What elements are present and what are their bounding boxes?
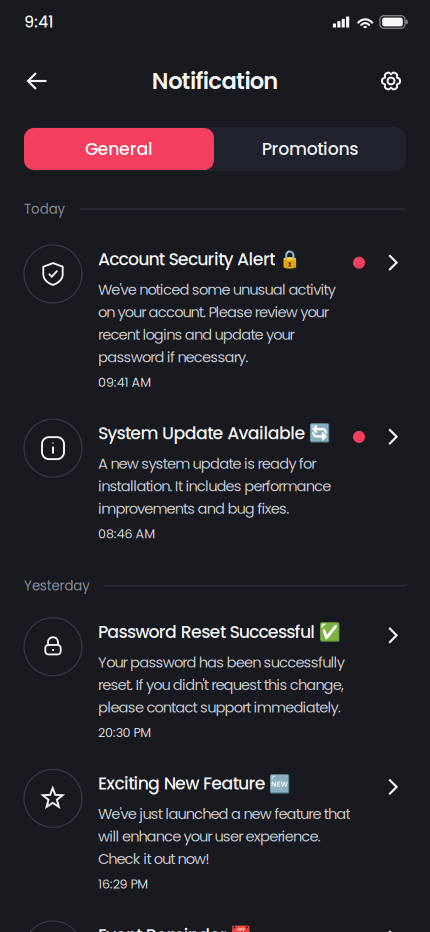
staticText: General — [85, 137, 153, 161]
button[interactable]: Exciting New Feature 🆕 — [24, 769, 406, 893]
button[interactable]: Back — [15, 59, 59, 103]
button[interactable]: General — [24, 128, 214, 170]
staticText: Password Reset Successful ✅ — [98, 620, 341, 644]
button[interactable]: System Update Available 🔄 — [24, 419, 406, 543]
staticText: 16:29 PM — [98, 875, 148, 893]
button[interactable]: Settings — [369, 59, 413, 103]
staticText: Yesterday — [24, 576, 90, 595]
staticText: We've just launched a new feature that w… — [98, 804, 350, 869]
button[interactable]: Password Reset Successful ✅ — [24, 618, 406, 741]
button[interactable]: Account Security Alert 🔒 — [24, 245, 406, 391]
staticText: Event Reminder 📅 — [98, 923, 252, 932]
staticText: Exciting New Feature 🆕 — [98, 771, 291, 796]
staticText: Your password has been successfully rese… — [98, 652, 345, 718]
staticText: Notification — [152, 65, 278, 97]
staticText: 9:41 — [24, 11, 54, 33]
button[interactable]: Event Reminder 📅 — [24, 921, 406, 932]
staticText: 08:46 AM — [98, 525, 155, 543]
staticText: 20:30 PM — [98, 724, 151, 741]
staticText: Promotions — [262, 137, 358, 161]
staticText: Today — [24, 200, 66, 218]
staticText: A new system update is ready for install… — [98, 453, 331, 519]
staticText: We've noticed some unusual activity on y… — [98, 279, 336, 367]
staticText: System Update Available 🔄 — [98, 421, 331, 445]
staticText: Account Security Alert 🔒 — [98, 247, 301, 271]
staticText: 09:41 AM — [98, 373, 151, 391]
button[interactable]: Promotions — [214, 128, 406, 170]
